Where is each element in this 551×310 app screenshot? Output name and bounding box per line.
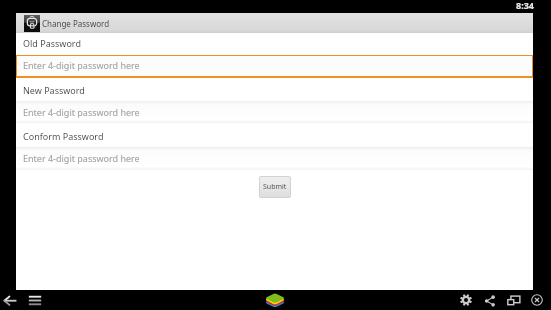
staticText: Enter 4-digit password here — [23, 59, 140, 71]
button[interactable]: Submit — [259, 176, 291, 198]
staticText: Enter 4-digit password here — [23, 106, 140, 118]
button[interactable]: Windows — [507, 295, 521, 306]
staticText: Change Password — [42, 18, 110, 29]
button[interactable]: Enter 4-digit password here — [16, 101, 533, 123]
button[interactable]: Enter 4-digit password here — [16, 55, 533, 78]
button[interactable]: Enter 4-digit password here — [16, 147, 533, 170]
staticText: Conform Password — [23, 130, 104, 142]
staticText: Submit — [263, 182, 287, 192]
staticText: 8:34 — [516, 0, 534, 11]
button[interactable]: BlueStacks — [264, 292, 286, 309]
staticText: Enter 4-digit password here — [23, 152, 140, 164]
button[interactable]: Recent apps — [28, 295, 42, 306]
button[interactable]: Close — [531, 294, 543, 306]
button[interactable]: Back — [3, 295, 17, 306]
button[interactable]: Share — [484, 295, 496, 307]
staticText: New Password — [23, 84, 85, 96]
button[interactable]: Settings — [460, 294, 472, 306]
staticText: Old Password — [23, 37, 81, 49]
